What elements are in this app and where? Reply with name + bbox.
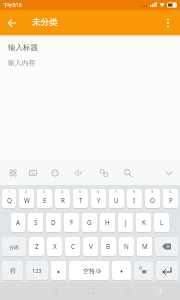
staticText: M	[142, 242, 148, 251]
button[interactable]: X	[47, 237, 62, 256]
button[interactable]: 6	[91, 189, 106, 208]
button[interactable]: 123	[26, 261, 48, 280]
staticText: H	[105, 218, 110, 227]
button[interactable]	[134, 261, 153, 280]
button[interactable]: Z	[29, 237, 44, 256]
staticText: 空格	[83, 267, 95, 275]
button[interactable]	[70, 165, 86, 181]
staticText: 4	[61, 189, 64, 194]
staticText: Y	[97, 196, 101, 205]
button[interactable]: 3	[37, 189, 52, 208]
button[interactable]: D	[46, 213, 61, 232]
button[interactable]: S	[28, 213, 43, 232]
button[interactable]: V	[83, 237, 98, 256]
staticText: 未分类	[32, 17, 58, 28]
staticText: D	[51, 218, 56, 227]
button[interactable]: F	[64, 213, 79, 232]
staticText: V	[89, 242, 93, 251]
button[interactable]: 7	[109, 189, 124, 208]
staticText: B	[106, 242, 111, 251]
staticText: Q	[7, 196, 12, 205]
button[interactable]	[155, 237, 178, 256]
staticText: 符	[10, 267, 16, 275]
button[interactable]: 符	[2, 261, 23, 280]
staticText: T	[79, 196, 83, 205]
staticText: 1	[8, 189, 11, 194]
button[interactable]: K	[136, 213, 151, 232]
staticText: W	[24, 196, 30, 205]
button[interactable]: 输入内容	[8, 58, 36, 67]
staticText: 2	[25, 189, 28, 194]
staticText: 3	[43, 189, 46, 194]
button[interactable]: 5	[73, 189, 88, 208]
staticText: C	[71, 242, 75, 251]
button[interactable]: 1	[2, 189, 16, 208]
staticText: F	[70, 218, 74, 227]
button[interactable]: C	[65, 237, 80, 256]
button[interactable]	[51, 261, 66, 280]
staticText: G	[87, 218, 92, 227]
staticText: P	[169, 196, 173, 205]
staticText: K	[142, 218, 146, 227]
staticText: 下午3:10	[3, 2, 22, 8]
button[interactable]	[161, 165, 177, 181]
staticText: 分词	[9, 244, 19, 250]
staticText: 123	[32, 267, 42, 274]
button[interactable]	[96, 165, 112, 181]
button[interactable]: G	[82, 213, 97, 232]
staticText: L	[160, 218, 164, 227]
staticText: R	[61, 196, 65, 205]
button[interactable]: 空格	[69, 261, 109, 280]
button[interactable]: 2	[19, 189, 34, 208]
button[interactable]: J	[118, 213, 133, 232]
button[interactable]	[25, 165, 41, 181]
button[interactable]	[6, 17, 18, 29]
button[interactable]: 0	[163, 189, 178, 208]
staticText: 0	[169, 189, 172, 194]
button[interactable]: N	[119, 237, 134, 256]
staticText: E	[43, 196, 47, 205]
staticText: A	[16, 218, 21, 227]
button[interactable]	[120, 165, 136, 181]
staticText: S	[34, 218, 38, 227]
staticText: 6	[97, 189, 100, 194]
staticText: J	[125, 218, 127, 227]
button[interactable]	[5, 165, 21, 181]
button[interactable]: 输入标题	[8, 43, 38, 52]
staticText: 7	[115, 189, 118, 194]
button[interactable]	[156, 261, 178, 280]
button[interactable]: M	[137, 237, 152, 256]
staticText: 5	[79, 189, 82, 194]
staticText: 9	[151, 189, 154, 194]
staticText: 8	[133, 189, 136, 194]
staticText: O	[150, 196, 155, 205]
staticText: I	[133, 196, 136, 205]
button[interactable]: 4	[55, 189, 70, 208]
button[interactable]: L	[154, 213, 169, 232]
button[interactable]: A	[11, 213, 25, 232]
button[interactable]: 9	[145, 189, 160, 208]
staticText: N	[124, 242, 129, 251]
button[interactable]: 8	[127, 189, 142, 208]
button[interactable]: H	[100, 213, 115, 232]
button[interactable]	[47, 165, 63, 181]
button[interactable]	[162, 17, 174, 29]
button[interactable]: 分词	[2, 237, 26, 256]
staticText: U	[114, 196, 119, 205]
button[interactable]: B	[101, 237, 116, 256]
staticText: Z	[35, 242, 39, 251]
staticText: X	[53, 242, 57, 251]
button[interactable]	[112, 261, 131, 280]
